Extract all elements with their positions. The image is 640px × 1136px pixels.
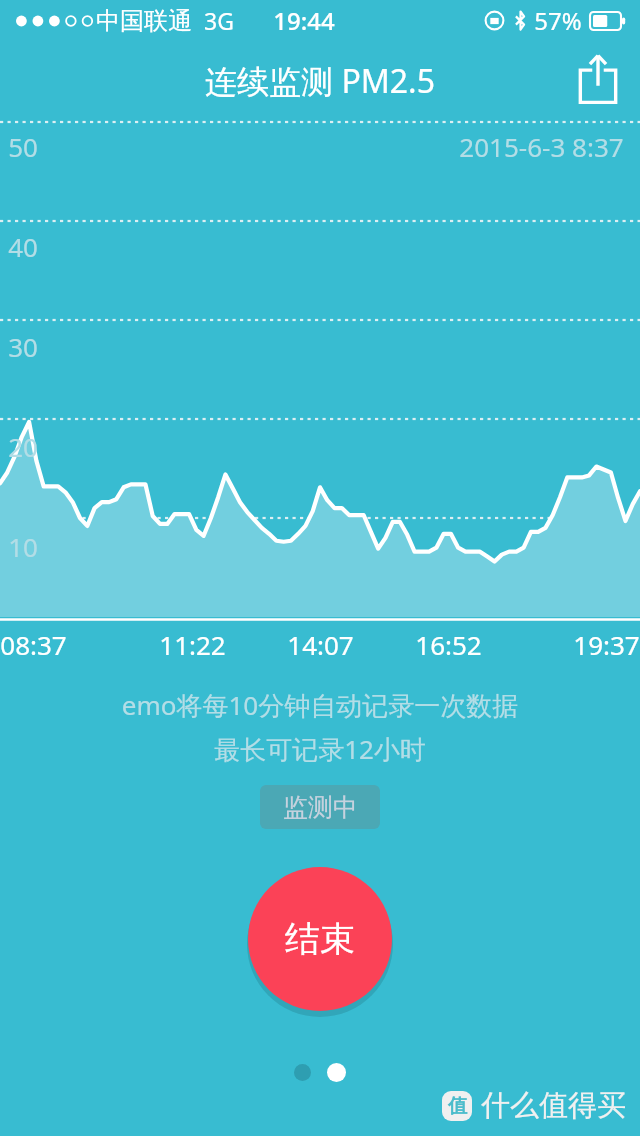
staticText: 3G [204,5,234,36]
staticText: 30 [8,329,38,364]
staticText: 16:52 [415,627,482,662]
staticText: 14:07 [287,627,354,662]
staticText: 值 [448,1094,467,1118]
staticText: 2015-6-3 8:37 [459,129,624,164]
button[interactable]: Share [572,53,624,105]
button[interactable]: Page 2 [327,1063,346,1082]
staticText: 40 [8,229,38,264]
staticText: 连续监测 PM2.5 [205,59,435,103]
button[interactable]: Page 1 [294,1064,311,1081]
staticText: 08:37 [0,627,67,662]
staticText: 20 [8,429,38,464]
staticText: 最长可记录12小时 [0,731,640,767]
staticText: 19:37 [573,627,640,662]
staticText: 57% [534,4,582,37]
staticText: 10 [8,529,38,564]
button[interactable]: 监测中 [260,785,380,829]
staticText: 50 [8,129,38,164]
staticText: 中国联通 [96,6,192,36]
staticText: 监测中 [283,792,358,823]
button[interactable]: 结束 [248,867,392,1011]
staticText: 11:22 [159,627,226,662]
staticText: 19:44 [273,4,335,37]
staticText: 什么值得买 [481,1087,626,1124]
staticText: 结束 [285,917,355,961]
staticText: emo将每10分钟自动记录一次数据 [0,687,640,723]
